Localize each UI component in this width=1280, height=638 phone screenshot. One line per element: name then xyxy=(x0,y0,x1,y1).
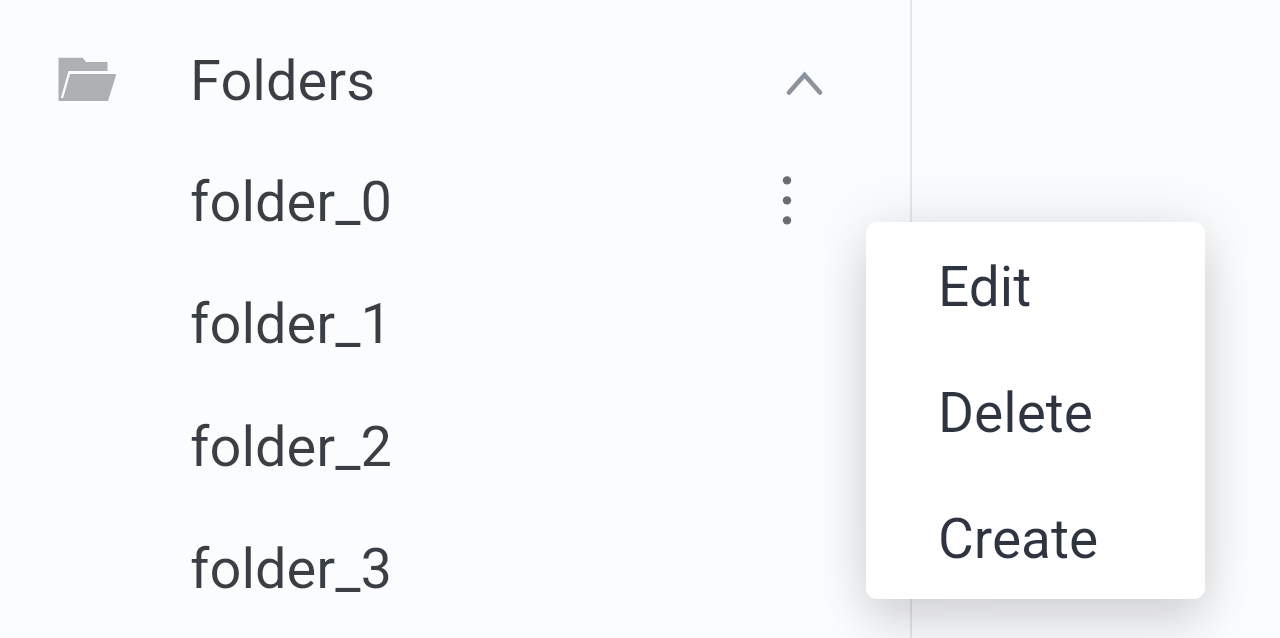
button[interactable]: folder_3 xyxy=(0,492,1280,614)
button[interactable]: folder_2 xyxy=(0,370,1280,492)
staticText: Delete xyxy=(938,381,1093,445)
button[interactable]: Folders xyxy=(0,26,1280,126)
staticText: Edit xyxy=(938,255,1032,319)
staticText: folder_1 xyxy=(190,291,393,357)
button[interactable]: Edit xyxy=(866,222,1205,348)
button[interactable]: More options xyxy=(757,160,817,240)
button[interactable]: Collapse folders xyxy=(764,52,844,114)
button[interactable]: Delete xyxy=(866,348,1205,474)
staticText: Folders xyxy=(190,48,376,114)
staticText: folder_0 xyxy=(190,169,393,235)
staticText: Create xyxy=(938,507,1099,571)
button[interactable]: folder_1 xyxy=(0,247,1280,369)
button[interactable]: folder_0 xyxy=(0,125,1280,247)
staticText: folder_2 xyxy=(190,414,393,480)
staticText: folder_3 xyxy=(190,536,393,602)
button[interactable]: Create xyxy=(866,474,1205,599)
